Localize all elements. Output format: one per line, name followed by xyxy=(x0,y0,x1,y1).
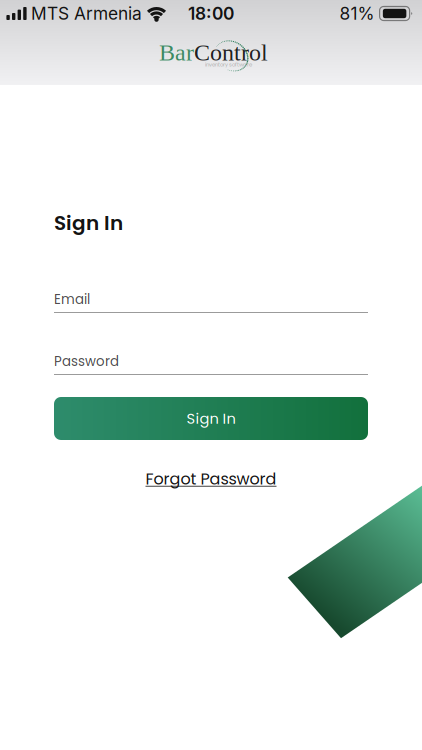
staticText: Sign In xyxy=(54,209,123,237)
staticText: Forgot Password xyxy=(145,468,276,490)
staticText: Bar xyxy=(159,39,194,66)
button[interactable]: Forgot Password xyxy=(54,467,368,491)
staticText: 81% xyxy=(340,3,375,24)
staticText: Sign In xyxy=(186,408,235,429)
staticText: Password xyxy=(54,352,119,371)
staticText: 18:00 xyxy=(188,3,234,24)
staticText: Control xyxy=(194,39,268,66)
staticText: MTS Armenia xyxy=(31,3,142,24)
staticText: inventory software xyxy=(205,61,252,68)
staticText: Email xyxy=(54,290,90,309)
button[interactable]: Sign In xyxy=(54,397,368,440)
